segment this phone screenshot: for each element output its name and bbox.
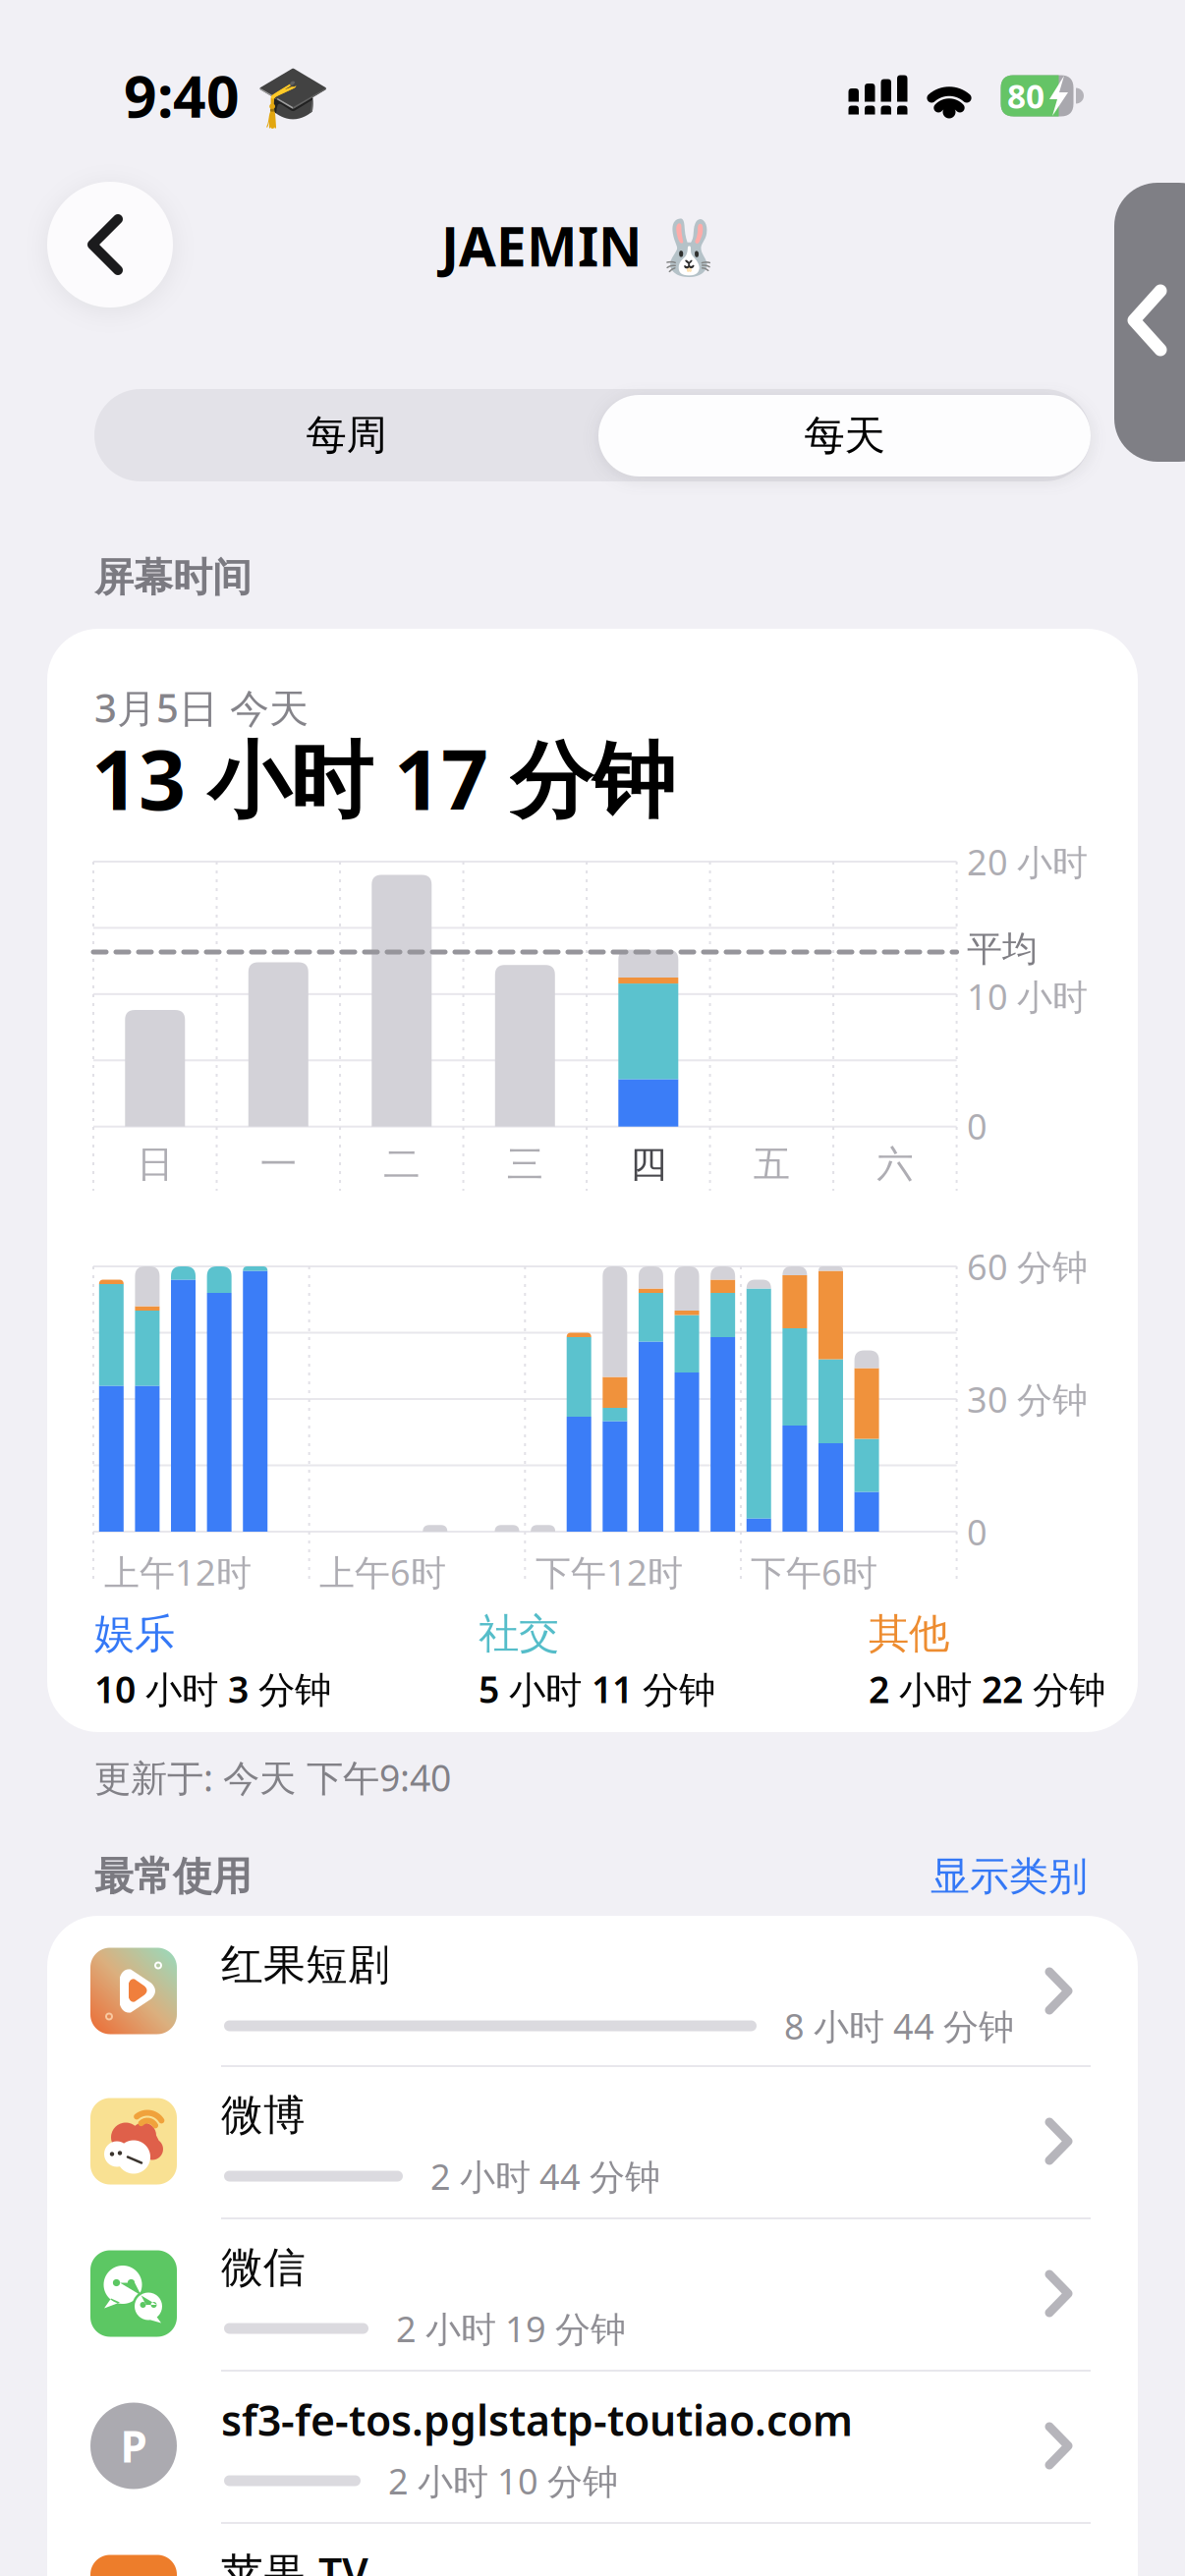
staticText: 每周 — [306, 410, 387, 460]
staticText: 下午12时 — [536, 1548, 683, 1595]
staticText: 红果短剧 — [221, 1939, 390, 1991]
staticText: JAEMIN 🐰 — [441, 210, 722, 281]
staticText: 2 小时 19 分钟 — [396, 2305, 626, 2352]
staticText: 60 分钟 — [967, 1243, 1088, 1290]
staticText: 微博 — [221, 2089, 306, 2141]
staticText: 0 — [967, 1102, 987, 1149]
staticText: 8 小时 44 分钟 — [784, 2002, 1014, 2049]
staticText: 更新于: 今天 下午9:40 — [94, 1753, 451, 1802]
staticText: 每天 — [804, 411, 885, 461]
staticText: 2 小时 10 分钟 — [388, 2457, 618, 2504]
staticText: 20 小时 — [967, 838, 1088, 885]
button[interactable]: 每天 — [598, 395, 1091, 476]
staticText: 2 小时 44 分钟 — [430, 2153, 660, 2200]
staticText: 上午12时 — [104, 1548, 252, 1595]
button[interactable]: 红果短剧 — [47, 1916, 1138, 2066]
staticText: 80 — [1007, 74, 1044, 118]
staticText: 五 — [753, 1142, 790, 1187]
button[interactable]: P — [47, 2371, 1138, 2521]
button[interactable] — [47, 182, 173, 308]
staticText: 上午6时 — [319, 1548, 446, 1595]
button[interactable]: 苹果 TV — [47, 2523, 1138, 2576]
staticText: 0 — [967, 1508, 987, 1555]
staticText: 娱乐 — [94, 1609, 175, 1659]
staticText: 二 — [384, 1142, 420, 1187]
staticText: 苹果 TV — [221, 2544, 368, 2576]
staticText: 屏幕时间 — [94, 554, 252, 602]
staticText: 三 — [507, 1142, 543, 1187]
staticText: 9:40 — [124, 57, 240, 134]
staticText: 5 小时 11 分钟 — [479, 1664, 715, 1713]
staticText: 10 小时 3 分钟 — [94, 1664, 331, 1713]
button[interactable]: 微博 — [47, 2066, 1138, 2216]
staticText: 显示类别 — [931, 1852, 1088, 1901]
staticText: 其他 — [869, 1609, 949, 1659]
staticText: 社交 — [479, 1609, 559, 1659]
staticText: 10 小时 — [967, 973, 1088, 1020]
staticText: 平均 — [967, 927, 1038, 971]
staticText: 四 — [630, 1142, 666, 1187]
button[interactable] — [1114, 183, 1185, 462]
staticText: 13 小时 17 分钟 — [91, 723, 675, 833]
staticText: 下午6时 — [751, 1548, 877, 1595]
staticText: 六 — [877, 1142, 913, 1187]
staticText: sf3-fe-tos.pglstatp-toutiao.com — [221, 2392, 853, 2448]
staticText: 🎓 — [255, 62, 330, 131]
staticText: 日 — [137, 1142, 173, 1187]
button[interactable]: 每周 — [97, 389, 595, 481]
staticText: P — [120, 2417, 147, 2475]
staticText: 微信 — [221, 2242, 306, 2293]
staticText: 2 小时 22 分钟 — [869, 1664, 1105, 1713]
staticText: 最常使用 — [94, 1852, 252, 1901]
staticText: 一 — [260, 1142, 297, 1187]
staticText: 30 分钟 — [967, 1376, 1088, 1422]
button[interactable]: 微信 — [47, 2218, 1138, 2369]
button[interactable]: 显示类别 — [931, 1852, 1088, 1901]
staticText: 3月5日 今天 — [94, 681, 309, 733]
